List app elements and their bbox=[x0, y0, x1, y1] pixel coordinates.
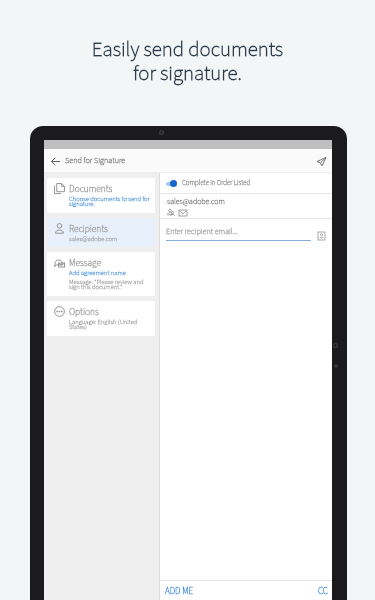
staticText: Documents bbox=[69, 182, 113, 194]
button[interactable]: Message bbox=[47, 252, 155, 296]
staticText: CC bbox=[318, 585, 328, 598]
button[interactable]: Documents bbox=[47, 178, 155, 213]
staticText: Options bbox=[69, 305, 99, 317]
button[interactable]: CC bbox=[317, 584, 329, 599]
staticText: Recipients bbox=[69, 222, 108, 234]
button[interactable]: Choose from contacts bbox=[316, 231, 326, 241]
staticText: Enter recipient email... bbox=[166, 226, 238, 238]
staticText: Easily send documents for signature. bbox=[0, 35, 375, 89]
staticText: Add agreement name bbox=[69, 268, 126, 277]
staticText: ADD ME bbox=[165, 585, 194, 598]
staticText: sales@adobe.com bbox=[167, 196, 225, 207]
staticText: Language: English (United States) bbox=[69, 317, 151, 332]
button[interactable]: Options bbox=[47, 301, 155, 336]
button[interactable]: Recipients bbox=[47, 218, 155, 247]
staticText: sales@adobe.com bbox=[69, 234, 118, 243]
staticText: Choose documents to send for signature. bbox=[69, 194, 151, 209]
staticText: Complete in Order Listed bbox=[182, 178, 251, 188]
staticText: Message: "Please review and sign this do… bbox=[69, 277, 151, 292]
button[interactable]: ADD ME bbox=[164, 584, 195, 599]
button[interactable]: Send bbox=[314, 154, 328, 168]
button[interactable]: Back bbox=[48, 154, 62, 168]
staticText: Message bbox=[69, 256, 102, 268]
staticText: Send for Signature bbox=[65, 155, 126, 167]
button[interactable]: Complete in Order Listed bbox=[166, 173, 332, 193]
